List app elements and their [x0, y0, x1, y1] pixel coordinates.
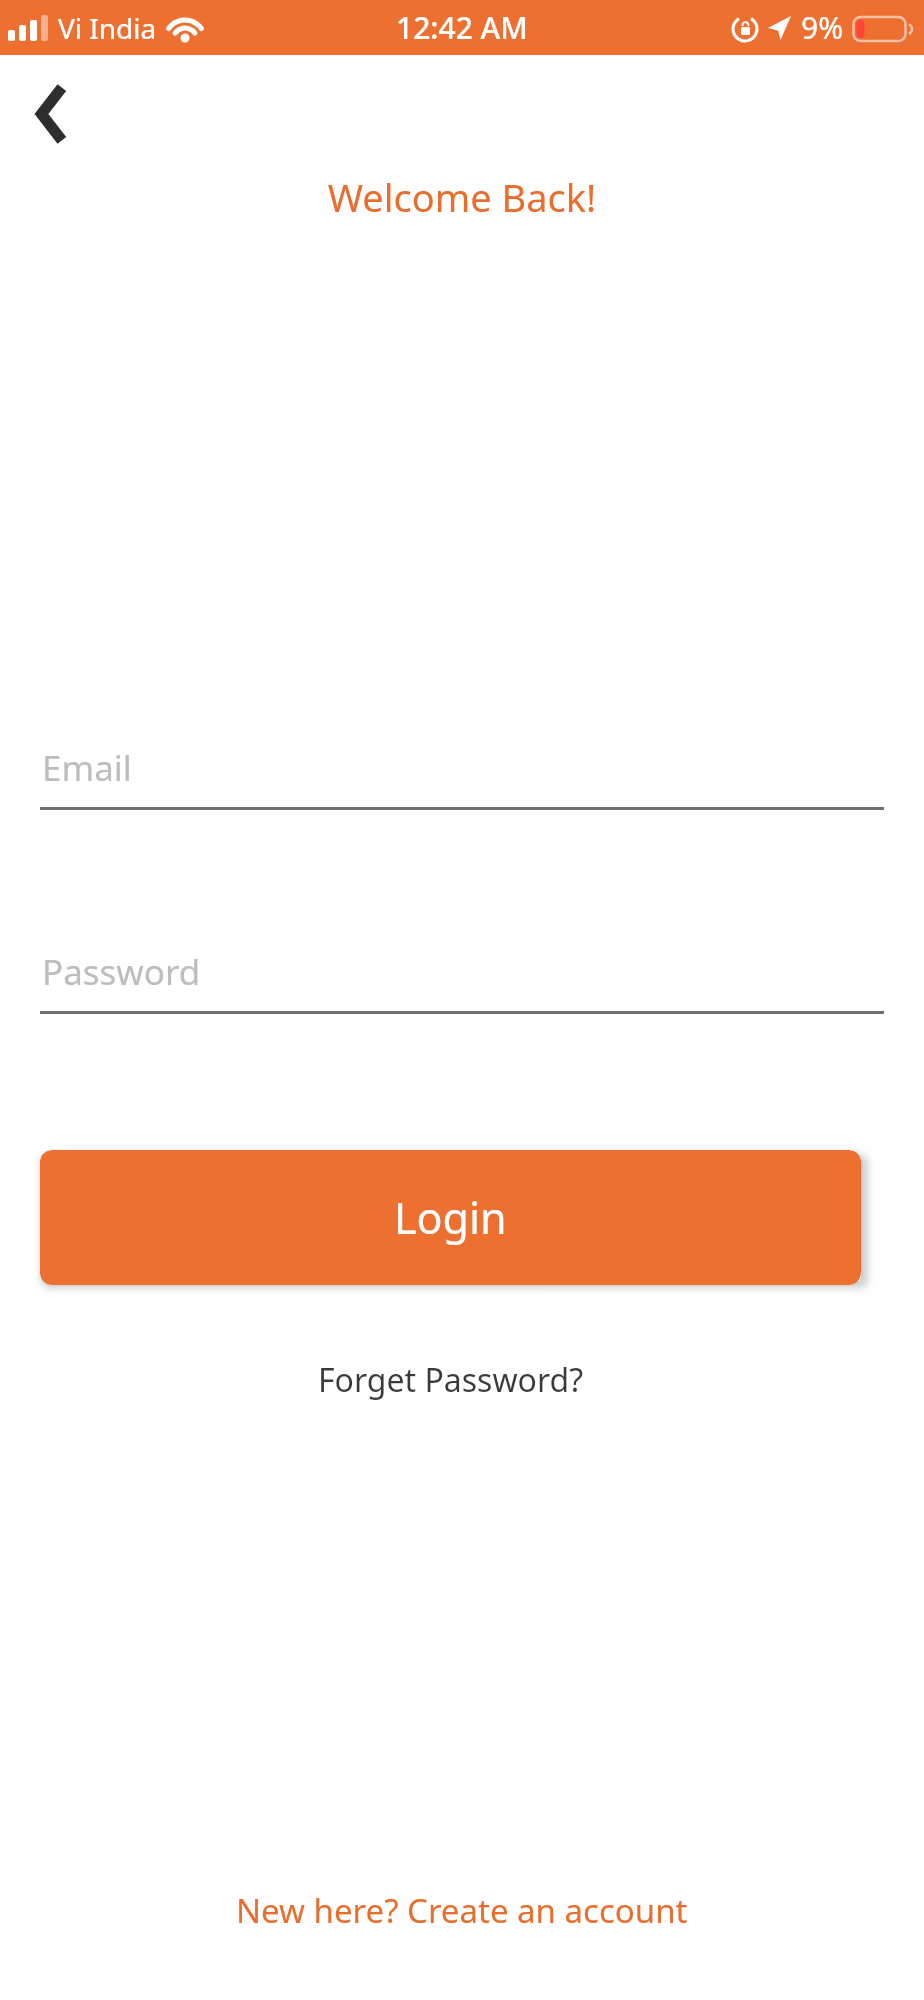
staticText: 12:42 AM	[396, 7, 528, 48]
staticText: Welcome Back!	[0, 171, 924, 223]
staticText: Password	[42, 948, 201, 996]
staticText: New here? Create an account	[236, 1888, 688, 1933]
button[interactable]: Password	[40, 934, 884, 1014]
button[interactable]	[20, 78, 80, 150]
staticText: Login	[394, 1188, 507, 1247]
staticText: Vi India	[58, 9, 157, 47]
button[interactable]: Forget Password?	[308, 1350, 594, 1410]
staticText: Forget Password?	[318, 1358, 584, 1402]
button[interactable]: New here? Create an account	[226, 1880, 698, 1941]
staticText: 9%	[801, 7, 844, 48]
button[interactable]: Login	[40, 1150, 861, 1285]
button[interactable]: Email	[40, 730, 884, 810]
staticText: Email	[42, 744, 132, 792]
